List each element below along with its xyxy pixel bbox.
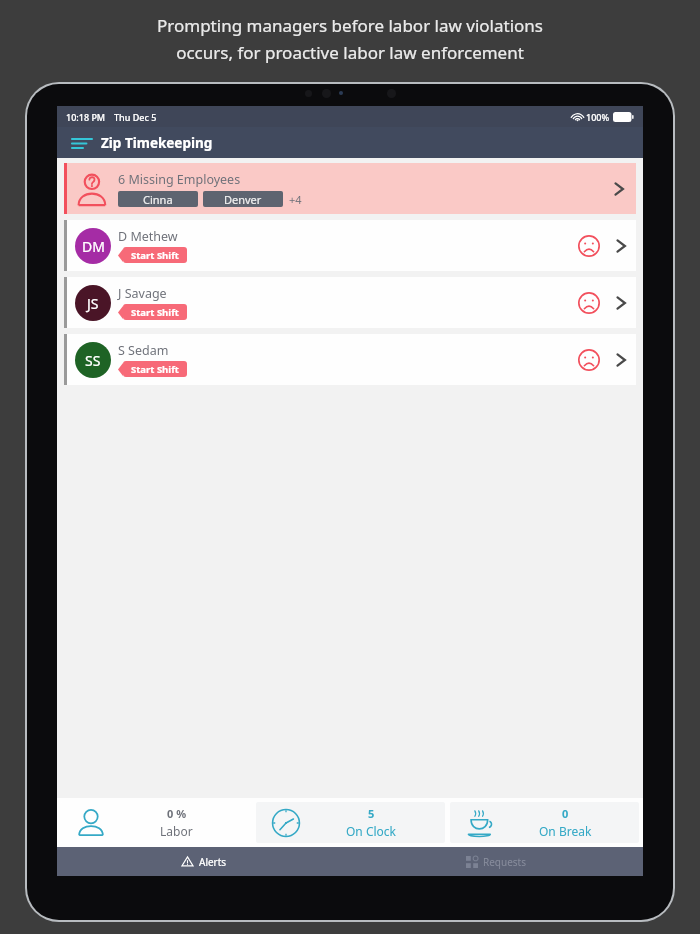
button[interactable]: 5 <box>256 802 445 843</box>
staticText: SS <box>85 351 101 370</box>
staticText: 5 <box>368 806 375 821</box>
button[interactable]: Alerts <box>57 847 350 876</box>
staticText: On Clock <box>346 823 397 839</box>
button[interactable]: DM <box>64 220 636 271</box>
staticText: Thu Dec 5 <box>114 111 157 123</box>
staticText: D Methew <box>118 228 178 245</box>
button[interactable]: Issue status <box>572 229 606 263</box>
button[interactable]: 6 Missing Employees <box>64 163 636 214</box>
staticText: Denver <box>224 192 262 207</box>
staticText: +4 <box>289 192 302 207</box>
staticText: Start Shift <box>131 363 179 376</box>
staticText: Cinna <box>143 192 173 207</box>
button[interactable]: 0 % <box>61 802 251 843</box>
staticText: Zip Timekeeping <box>101 134 213 152</box>
button[interactable]: SS <box>64 334 636 385</box>
staticText: 100% <box>586 111 610 123</box>
staticText: Start Shift <box>131 306 179 319</box>
staticText: 0 <box>562 806 569 821</box>
staticText: Prompting managers before labor law viol… <box>157 14 543 37</box>
button[interactable]: JS <box>64 277 636 328</box>
button[interactable]: Open navigation menu <box>67 128 97 158</box>
staticText: J Savage <box>118 285 167 302</box>
button[interactable]: 0 <box>450 802 639 843</box>
staticText: 10:18 PM <box>66 111 106 123</box>
staticText: Start Shift <box>131 249 179 262</box>
button[interactable]: Requests <box>350 847 643 876</box>
staticText: Labor <box>160 823 193 839</box>
staticText: JS <box>87 294 99 313</box>
staticText: DM <box>82 237 105 256</box>
staticText: Requests <box>483 855 527 869</box>
staticText: Alerts <box>199 855 227 869</box>
staticText: 0 % <box>167 806 187 821</box>
button[interactable]: Issue status <box>572 343 606 377</box>
staticText: occurs, for proactive labor law enforcem… <box>176 41 524 64</box>
staticText: On Break <box>539 823 592 839</box>
staticText: S Sedam <box>118 342 169 359</box>
staticText: 6 Missing Employees <box>118 171 241 188</box>
button[interactable]: Issue status <box>572 286 606 320</box>
